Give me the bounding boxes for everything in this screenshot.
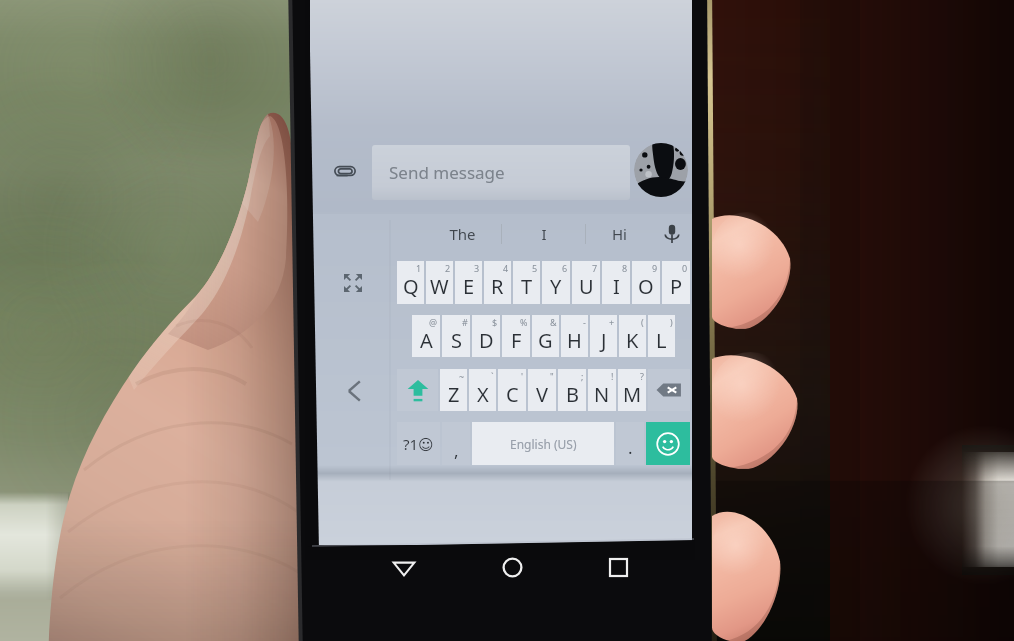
staticText: Q [403, 273, 419, 300]
button[interactable]: Send message [372, 145, 630, 200]
button[interactable]: , [442, 422, 470, 465]
staticText: Z [448, 381, 460, 408]
staticText: 4 [503, 262, 509, 274]
button[interactable]: 0 [662, 261, 690, 304]
staticText: " [550, 370, 554, 382]
staticText: ~ [459, 370, 465, 382]
button[interactable]: $ [472, 315, 500, 357]
staticText: D [479, 327, 494, 354]
staticText: J [601, 327, 607, 354]
button[interactable]: ; [558, 369, 586, 411]
button[interactable]: 8 [602, 261, 630, 304]
staticText: F [511, 327, 522, 354]
staticText: 3 [474, 262, 480, 274]
staticText: 6 [562, 262, 568, 274]
staticText: E [463, 273, 475, 300]
button[interactable]: Profile picture [634, 143, 688, 197]
staticText: 2 [445, 262, 451, 274]
staticText: ; [581, 370, 584, 382]
staticText: C [506, 381, 519, 408]
button[interactable]: 7 [572, 261, 600, 304]
staticText: ?1☺ [403, 434, 434, 454]
staticText: & [550, 316, 557, 328]
button[interactable]: The [424, 214, 501, 254]
staticText: N [594, 381, 610, 408]
staticText: # [462, 316, 468, 328]
staticText: ? [640, 370, 644, 382]
staticText: @ [429, 316, 438, 328]
staticText: I [541, 224, 547, 244]
staticText: - [583, 316, 586, 328]
button[interactable]: # [442, 315, 470, 357]
button[interactable]: Home [490, 545, 534, 589]
staticText: A [420, 327, 433, 354]
staticText: 5 [532, 262, 538, 274]
staticText: ( [641, 316, 644, 328]
button[interactable]: 4 [484, 261, 511, 304]
button[interactable]: ? [618, 369, 646, 411]
button[interactable]: Resize keyboard [336, 266, 370, 300]
button[interactable]: 9 [632, 261, 660, 304]
staticText: B [566, 381, 579, 408]
staticText: O [638, 273, 654, 300]
button[interactable]: 3 [455, 261, 482, 304]
button[interactable]: Emoji [646, 422, 690, 465]
staticText: Y [550, 273, 562, 300]
staticText: + [609, 316, 615, 328]
staticText: R [491, 273, 504, 300]
button[interactable]: ` [469, 369, 496, 411]
staticText: Hi [612, 224, 627, 244]
button[interactable]: " [528, 369, 556, 411]
staticText: . [628, 436, 633, 459]
button[interactable]: % [502, 315, 530, 357]
button[interactable]: ! [588, 369, 616, 411]
button[interactable]: + [590, 315, 617, 357]
staticText: ` [491, 370, 494, 382]
staticText: % [520, 316, 528, 328]
staticText: $ [492, 316, 498, 328]
staticText: X [477, 381, 489, 408]
staticText: ' [521, 370, 524, 382]
button[interactable]: Recent apps [596, 545, 640, 589]
button[interactable]: Back [382, 545, 426, 589]
button[interactable]: ~ [440, 369, 467, 411]
button[interactable]: English (US) [472, 422, 614, 465]
staticText: 7 [592, 262, 598, 274]
button[interactable]: 2 [426, 261, 453, 304]
staticText: T [521, 273, 533, 300]
button[interactable]: Hi [586, 214, 652, 254]
button[interactable]: - [561, 315, 588, 357]
button[interactable]: ) [648, 315, 675, 357]
button[interactable]: I [502, 214, 585, 254]
button[interactable]: 6 [542, 261, 570, 304]
button[interactable]: 5 [513, 261, 540, 304]
staticText: 8 [622, 262, 628, 274]
staticText: 0 [682, 262, 688, 274]
button[interactable]: Attach file [328, 155, 362, 189]
button[interactable]: & [532, 315, 559, 357]
staticText: The [449, 224, 476, 244]
staticText: H [567, 327, 582, 354]
staticText: I [613, 273, 620, 300]
button[interactable]: ( [619, 315, 646, 357]
button[interactable]: Backspace [648, 369, 690, 411]
button[interactable]: ?1☺ [397, 422, 440, 465]
staticText: K [626, 327, 639, 354]
button[interactable]: Hide keyboard [338, 374, 372, 408]
staticText: Send message [389, 161, 505, 184]
button[interactable]: Voice input [652, 214, 692, 254]
staticText: ! [611, 370, 614, 382]
button[interactable]: 1 [397, 261, 424, 304]
staticText: V [536, 381, 548, 408]
staticText: 9 [652, 262, 658, 274]
staticText: , [454, 439, 459, 462]
staticText: P [670, 273, 683, 300]
staticText: M [623, 381, 642, 408]
staticText: L [656, 327, 667, 354]
staticText: W [430, 273, 449, 300]
button[interactable]: . [616, 422, 644, 465]
button[interactable]: Shift [397, 369, 438, 411]
staticText: ) [670, 316, 673, 328]
button[interactable]: @ [412, 315, 440, 357]
button[interactable]: ' [498, 369, 526, 411]
